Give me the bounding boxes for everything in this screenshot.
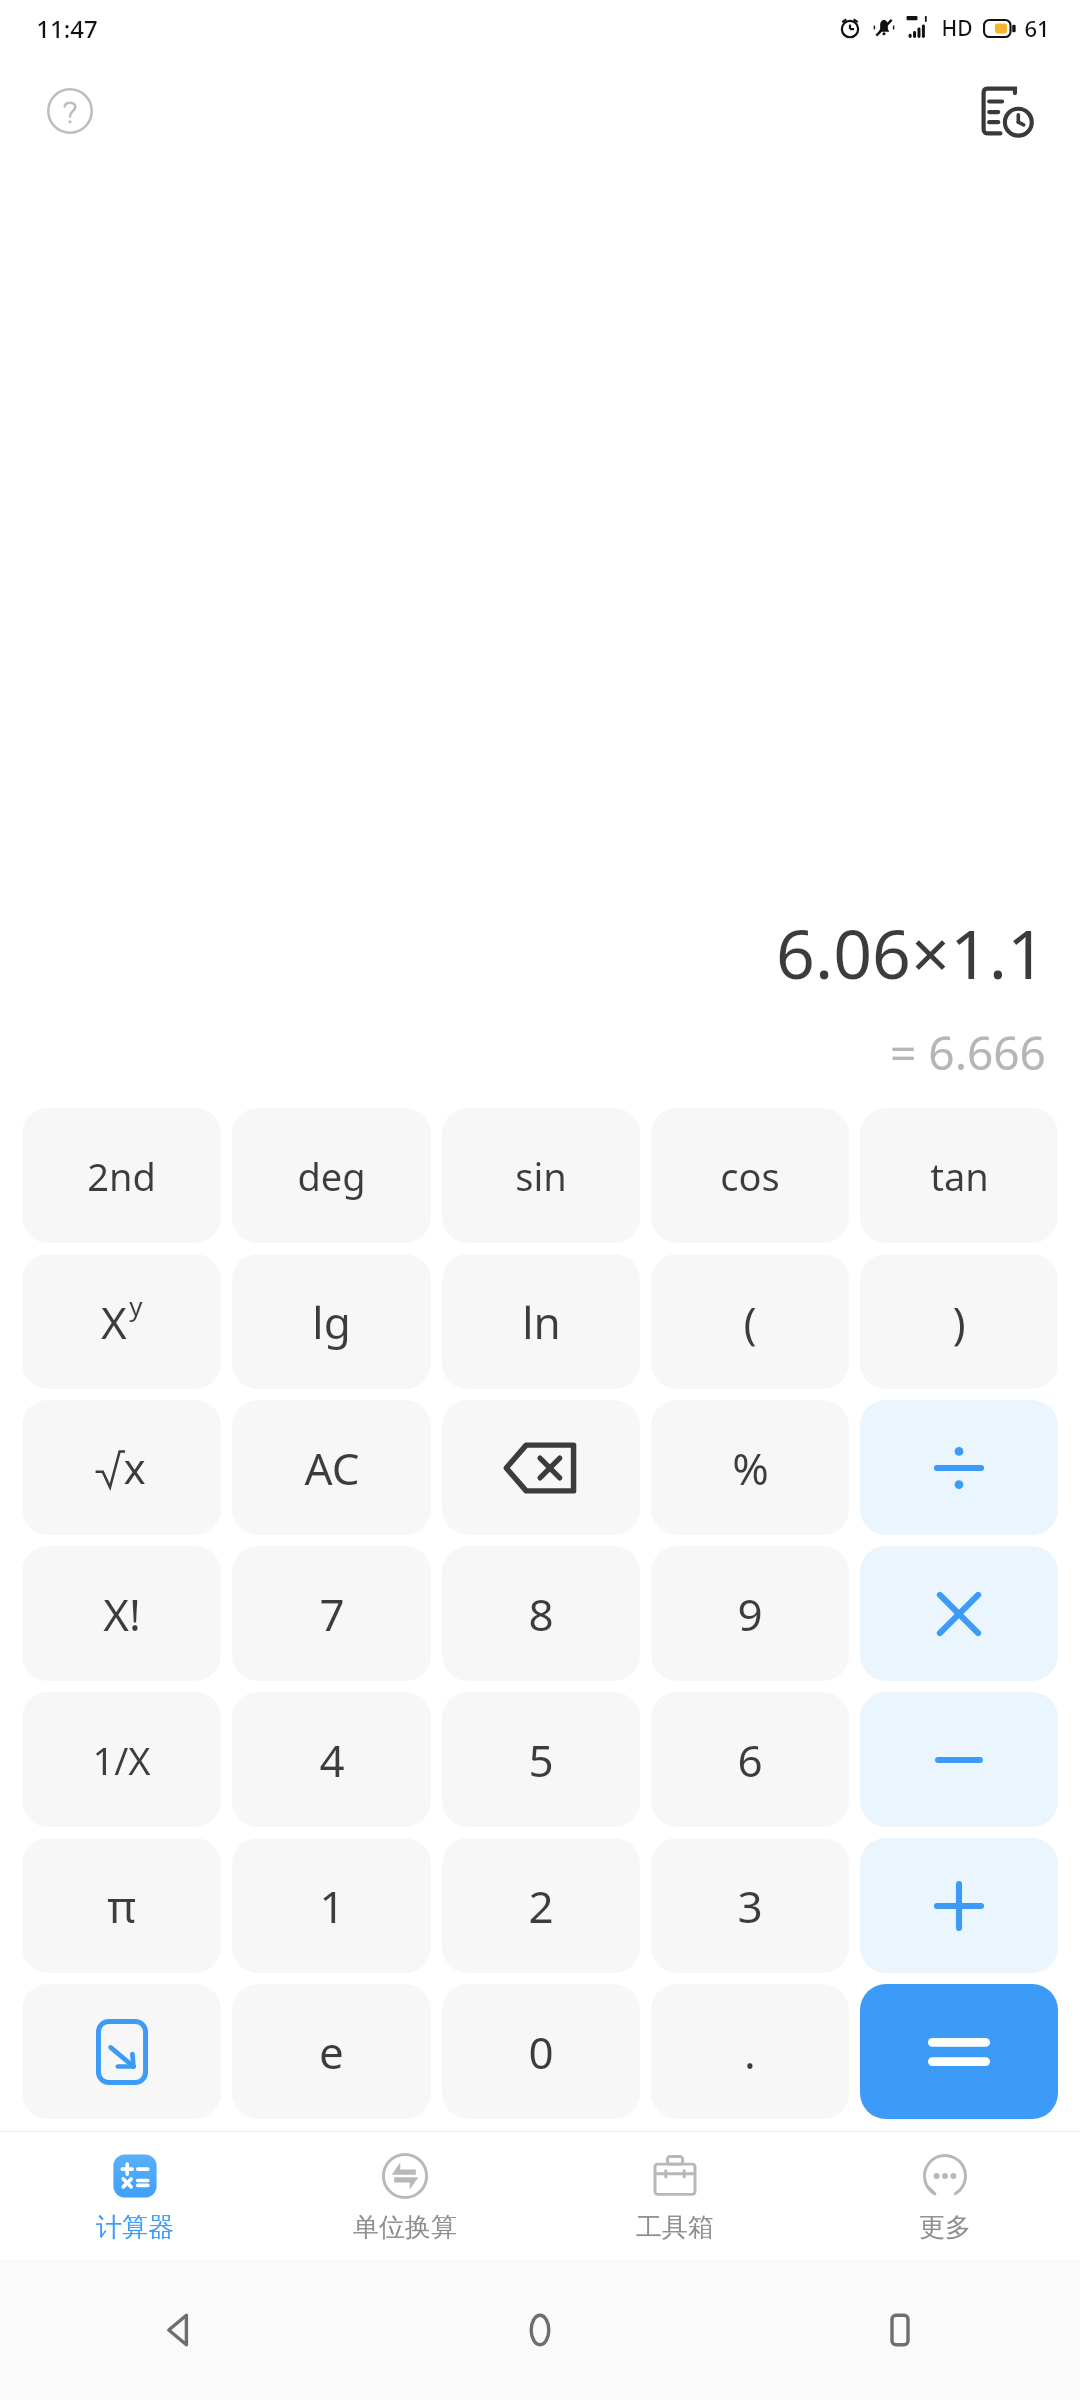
staticText: x: [123, 1439, 146, 1496]
staticText: 7: [319, 1584, 345, 1644]
staticText: AC: [304, 1438, 360, 1498]
button[interactable]: [860, 1692, 1058, 1827]
button[interactable]: e: [232, 1984, 431, 2119]
staticText: (: [743, 1292, 757, 1352]
staticText: 2nd: [87, 1150, 156, 1202]
button[interactable]: lg: [232, 1254, 431, 1389]
button[interactable]: [860, 1838, 1058, 1973]
staticText: 1: [319, 1876, 345, 1936]
button[interactable]: 计算器: [0, 2132, 270, 2260]
staticText: 6: [737, 1730, 763, 1790]
button[interactable]: Collapse keypad: [22, 1984, 221, 2119]
button[interactable]: 1: [232, 1838, 431, 1973]
button[interactable]: 6: [651, 1692, 849, 1827]
button[interactable]: Backspace: [442, 1400, 640, 1535]
button[interactable]: ): [860, 1254, 1058, 1389]
button[interactable]: %: [651, 1400, 849, 1535]
staticText: 单位换算: [353, 2211, 457, 2244]
button[interactable]: 2: [442, 1838, 640, 1973]
button[interactable]: X: [22, 1254, 221, 1389]
staticText: 11:47: [36, 12, 98, 45]
button[interactable]: 4: [232, 1692, 431, 1827]
button[interactable]: ln: [442, 1254, 640, 1389]
staticText: 9: [737, 1584, 763, 1644]
staticText: e: [319, 2022, 344, 2082]
button[interactable]: deg: [232, 1108, 431, 1243]
staticText: π: [107, 1876, 136, 1936]
button[interactable]: 工具箱: [540, 2132, 810, 2260]
button[interactable]: History: [974, 79, 1038, 143]
button[interactable]: 更多: [810, 2132, 1080, 2260]
staticText: X: [101, 1292, 127, 1352]
staticText: 更多: [919, 2211, 971, 2244]
staticText: 2: [528, 1876, 554, 1936]
button[interactable]: [860, 1984, 1058, 2119]
button[interactable]: Help: [42, 83, 98, 139]
button[interactable]: x: [22, 1400, 221, 1535]
staticText: 0: [528, 2022, 554, 2082]
staticText: lg: [312, 1292, 351, 1352]
staticText: 6.06×1.1: [776, 906, 1046, 999]
button[interactable]: 9: [651, 1546, 849, 1681]
staticText: 4: [319, 1730, 345, 1790]
button[interactable]: tan: [860, 1108, 1058, 1243]
button[interactable]: (: [651, 1254, 849, 1389]
staticText: 1/X: [92, 1734, 151, 1786]
staticText: 8: [528, 1584, 554, 1644]
staticText: y: [129, 1288, 143, 1323]
staticText: = 6.666: [890, 1021, 1046, 1084]
button[interactable]: 8: [442, 1546, 640, 1681]
button[interactable]: X!: [22, 1546, 221, 1681]
button[interactable]: 0: [442, 1984, 640, 2119]
staticText: sin: [515, 1150, 567, 1202]
button[interactable]: π: [22, 1838, 221, 1973]
button[interactable]: 7: [232, 1546, 431, 1681]
button[interactable]: 1/X: [22, 1692, 221, 1827]
staticText: ln: [522, 1292, 561, 1352]
button[interactable]: Back: [0, 2260, 360, 2400]
staticText: 5: [528, 1730, 554, 1790]
button[interactable]: Home: [360, 2260, 720, 2400]
button[interactable]: 2nd: [22, 1108, 221, 1243]
button[interactable]: 单位换算: [270, 2132, 540, 2260]
staticText: deg: [297, 1150, 366, 1202]
staticText: cos: [720, 1150, 780, 1202]
button[interactable]: AC: [232, 1400, 431, 1535]
button[interactable]: cos: [651, 1108, 849, 1243]
button[interactable]: .: [651, 1984, 849, 2119]
button[interactable]: 5: [442, 1692, 640, 1827]
staticText: 3: [737, 1876, 763, 1936]
staticText: 61: [1024, 13, 1050, 43]
staticText: tan: [930, 1150, 989, 1202]
staticText: %: [732, 1438, 769, 1498]
button[interactable]: 3: [651, 1838, 849, 1973]
staticText: 计算器: [96, 2211, 174, 2244]
button[interactable]: [860, 1400, 1058, 1535]
button[interactable]: sin: [442, 1108, 640, 1243]
staticText: ): [952, 1292, 966, 1352]
staticText: 工具箱: [636, 2211, 714, 2244]
staticText: X!: [103, 1584, 141, 1644]
staticText: HD: [941, 14, 973, 43]
button[interactable]: [860, 1546, 1058, 1681]
button[interactable]: Recent apps: [720, 2260, 1080, 2400]
staticText: .: [744, 2022, 756, 2082]
